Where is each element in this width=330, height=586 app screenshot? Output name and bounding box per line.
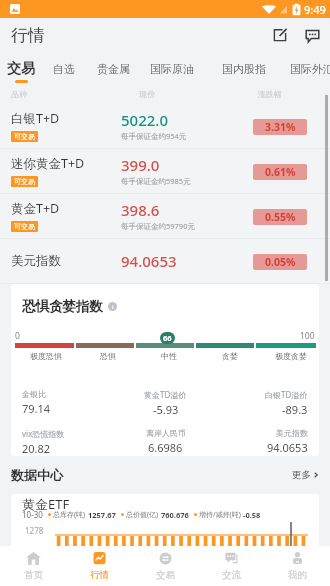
staticText: 5022.0 xyxy=(121,110,168,130)
staticText: 每手保证金约59790元 xyxy=(121,221,195,231)
staticText: -89.3 xyxy=(282,402,308,417)
staticText: 国际外汇 xyxy=(290,62,330,76)
staticText: 美元指数 xyxy=(276,428,308,438)
staticText: 9:49 xyxy=(304,2,326,17)
staticText: 760.676 xyxy=(161,510,189,520)
button[interactable]: 我的 xyxy=(264,546,330,586)
button[interactable]: 行情 xyxy=(66,546,132,586)
staticText: 国际原油 xyxy=(150,62,194,76)
staticText: 我的 xyxy=(288,569,307,581)
button[interactable]: 贵金属 xyxy=(97,62,130,76)
button[interactable]: 白银T+D xyxy=(0,104,330,149)
staticText: 迷你黄金T+D xyxy=(11,155,85,172)
staticText: 0 xyxy=(15,330,20,342)
staticText: 行情 xyxy=(11,25,45,46)
staticText: 白银T+D xyxy=(11,110,60,127)
staticText: 398.6 xyxy=(121,200,160,220)
staticText: 可交易 xyxy=(14,132,35,141)
staticText: 可交易 xyxy=(14,222,35,231)
staticText: -0.58 xyxy=(243,510,261,520)
staticText: 79.14 xyxy=(22,401,51,416)
staticText: 美元指数 xyxy=(11,253,61,269)
button[interactable]: 迷你黄金T+D xyxy=(0,149,330,194)
staticText: 现价 xyxy=(139,89,155,99)
staticText: 10-30 xyxy=(22,509,43,520)
staticText: 0.05% xyxy=(265,255,296,269)
staticText: 贪婪 xyxy=(222,351,238,361)
staticText: 自选 xyxy=(53,62,75,76)
staticText: 20.82 xyxy=(22,441,51,456)
staticText: 总库存(吨) xyxy=(53,510,86,520)
staticText: 交易 xyxy=(7,60,35,78)
button[interactable]: 消息 xyxy=(296,19,328,51)
staticText: 每手保证金约5985元 xyxy=(121,176,191,186)
staticText: 94.0653 xyxy=(267,440,308,455)
staticText: 离岸人民币 xyxy=(146,428,186,438)
staticText: vix恐慌指数 xyxy=(22,428,65,439)
button[interactable]: 更多 xyxy=(292,469,319,481)
staticText: 399.0 xyxy=(121,155,160,175)
staticText: 总价值(亿) xyxy=(126,510,159,520)
button[interactable]: 交易 xyxy=(7,60,35,83)
staticText: 6.6986 xyxy=(148,440,183,455)
staticText: 1257.67 xyxy=(88,510,116,520)
staticText: -5.93 xyxy=(153,402,179,417)
staticText: 1278 xyxy=(25,525,44,536)
staticText: 94.0653 xyxy=(121,251,177,271)
button[interactable]: 国内股指 xyxy=(222,62,266,76)
staticText: 黄金T+D xyxy=(11,200,60,217)
staticText: 恐惧 xyxy=(100,351,116,361)
staticText: 数据中心 xyxy=(11,467,63,483)
staticText: 国内股指 xyxy=(222,62,266,76)
staticText: 涨跌幅 xyxy=(258,89,282,99)
staticText: 100 xyxy=(300,330,315,342)
staticText: 增持/减持(吨) xyxy=(199,510,241,520)
staticText: 行情 xyxy=(90,569,109,581)
staticText: 恐惧贪婪指数 xyxy=(22,298,103,315)
staticText: 交易 xyxy=(156,569,175,581)
button[interactable]: 首页 xyxy=(0,546,66,586)
staticText: 黄金TD溢价 xyxy=(144,389,187,400)
button[interactable]: 黄金T+D xyxy=(0,194,330,239)
staticText: 黄金ETF xyxy=(22,495,70,513)
staticText: 贵金属 xyxy=(97,62,130,76)
button[interactable]: 编辑 xyxy=(264,19,296,51)
staticText: 可交易 xyxy=(14,177,35,186)
staticText: 中性 xyxy=(161,351,177,361)
button[interactable]: 自选 xyxy=(53,62,75,76)
button[interactable]: 交易 xyxy=(132,546,198,586)
staticText: 3.31% xyxy=(265,120,296,134)
staticText: 白银TD溢价 xyxy=(265,389,308,400)
staticText: 0.55% xyxy=(265,210,296,224)
staticText: 每手保证金约954元 xyxy=(121,131,187,141)
staticText: 0.61% xyxy=(265,165,296,179)
staticText: 极度恐惧 xyxy=(30,351,62,361)
staticText: 更多 xyxy=(292,469,311,481)
button[interactable]: 美元指数 xyxy=(0,239,330,284)
staticText: 交流 xyxy=(222,569,241,581)
staticText: i xyxy=(112,303,114,311)
staticText: 极度贪婪 xyxy=(275,351,307,361)
button[interactable]: 国际原油 xyxy=(150,62,194,76)
staticText: 金银比 xyxy=(22,389,46,399)
button[interactable]: 国际外汇 xyxy=(290,62,330,76)
staticText: 品种 xyxy=(11,89,27,99)
button[interactable]: 交流 xyxy=(198,546,264,586)
staticText: 首页 xyxy=(24,569,43,581)
staticText: 66 xyxy=(163,333,172,343)
